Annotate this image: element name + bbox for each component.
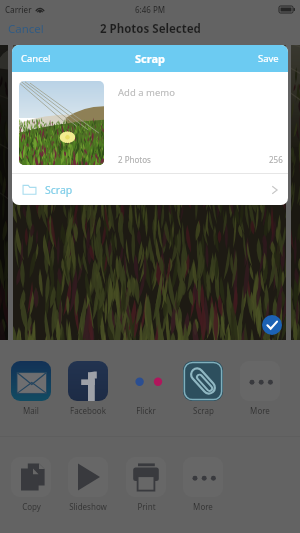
button[interactable]: Facebook [68,361,108,416]
staticText: More [250,405,270,416]
staticText: Copy [22,501,41,512]
staticText: Carrier [5,4,32,15]
staticText: Add a memo [118,86,175,99]
button[interactable]: Copy [11,457,51,512]
button[interactable]: Slideshow [68,457,108,512]
staticText: Scrap [135,51,165,66]
staticText: Slideshow [69,501,107,512]
staticText: Mail [23,405,39,416]
button[interactable]: Scrap [183,361,223,416]
staticText: Scrap [45,183,73,197]
button[interactable]: Scrap [12,174,288,205]
button[interactable]: More [183,457,223,512]
staticText: 2 Photos Selected [100,21,201,37]
button[interactable]: Mail [11,361,51,416]
staticText: 6:46 PM [135,4,166,15]
button[interactable]: Cancel [21,52,51,65]
staticText: Flickr [136,405,156,416]
button[interactable]: More [240,361,280,416]
button[interactable]: Print [126,457,166,512]
staticText: 256 [269,154,283,165]
button[interactable]: Save [258,52,279,65]
staticText: Print [137,501,156,512]
button[interactable]: Cancel [8,21,44,37]
staticText: Scrap [193,405,214,416]
staticText: Facebook [70,405,106,416]
staticText: More [193,501,213,512]
staticText: 2 Photos [118,154,151,165]
button[interactable]: Flickr [126,361,166,416]
